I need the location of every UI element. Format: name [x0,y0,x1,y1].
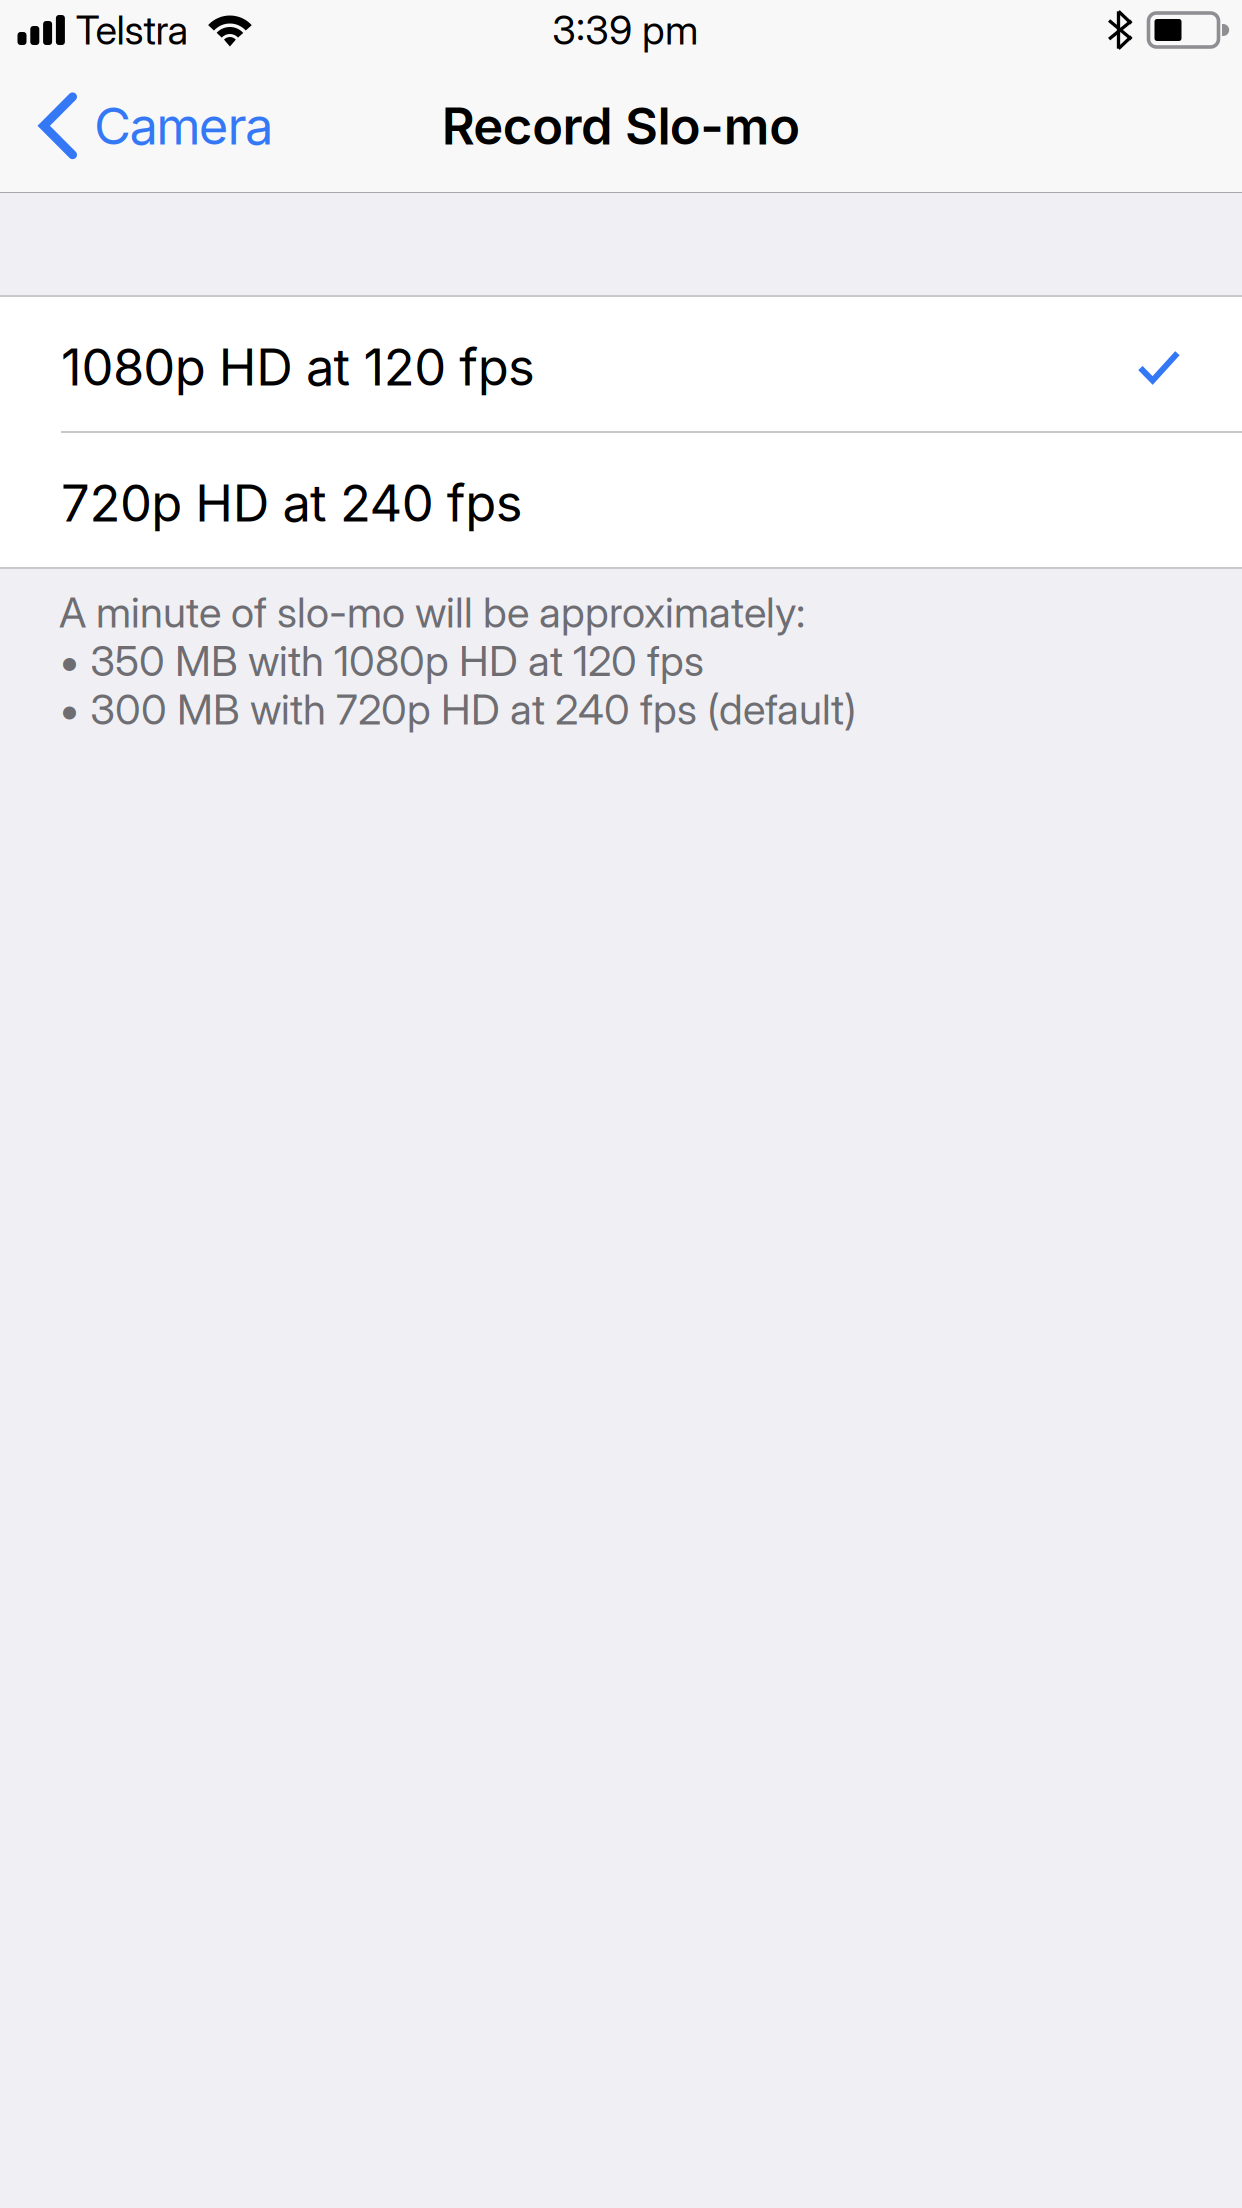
staticText: Telstra [75,6,188,54]
staticText: A minute of slo-mo will be approximately… [59,587,857,734]
staticText: 3:39 pm [552,6,698,54]
button[interactable]: Camera [0,60,297,192]
staticText: Record Slo-mo [442,95,800,157]
button[interactable]: 720p HD at 240 fps [0,433,1242,567]
staticText: 1080p HD at 120 fps [61,336,535,398]
button[interactable]: 1080p HD at 120 fps [0,297,1242,431]
staticText: Camera [94,95,273,157]
staticText: 720p HD at 240 fps [61,472,523,534]
